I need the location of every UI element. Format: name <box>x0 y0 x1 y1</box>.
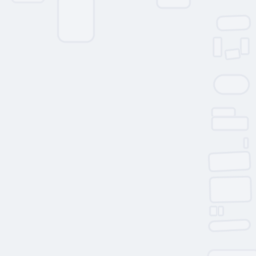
button[interactable]: Status pill <box>217 16 250 30</box>
button[interactable]: Back <box>12 0 44 2</box>
button[interactable]: Open tile <box>58 0 94 42</box>
button[interactable]: Card two <box>210 177 251 202</box>
button[interactable]: Card one <box>209 152 250 170</box>
button[interactable]: Search field <box>157 0 190 8</box>
button[interactable]: Progress bar <box>209 220 250 230</box>
button[interactable]: Folder <box>210 106 251 134</box>
button[interactable]: Chart <box>205 36 251 62</box>
button[interactable]: Toggle <box>214 75 249 94</box>
button[interactable]: Card three <box>208 250 256 256</box>
